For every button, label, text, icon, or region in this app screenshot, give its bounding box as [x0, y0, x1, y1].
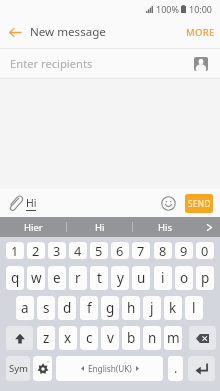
staticText: 9 — [180, 242, 188, 259]
staticText: w — [31, 269, 42, 287]
button[interactable]: f — [80, 296, 98, 320]
staticText: m — [167, 329, 180, 347]
button[interactable]: j — [143, 296, 161, 320]
staticText: 4 — [74, 242, 82, 259]
staticText: e — [53, 269, 61, 287]
button[interactable]: His — [133, 217, 198, 237]
staticText: v — [107, 329, 114, 347]
button[interactable]: a — [16, 296, 34, 320]
button[interactable]: SEND — [185, 194, 213, 213]
staticText: SEND — [188, 198, 211, 209]
button[interactable]: 3 — [48, 242, 66, 259]
staticText: 7 — [137, 242, 145, 259]
button[interactable]: m — [164, 326, 182, 350]
staticText: o — [180, 269, 189, 287]
button[interactable]: Shift — [6, 326, 33, 350]
staticText: . — [174, 360, 178, 377]
button[interactable]: 1 — [6, 242, 24, 259]
button[interactable]: 6 — [111, 242, 129, 259]
button[interactable]: r — [69, 266, 87, 290]
staticText: b — [127, 329, 136, 347]
button[interactable]: Space — [56, 356, 163, 381]
staticText: n — [148, 329, 157, 347]
staticText: q — [11, 269, 20, 287]
staticText: Hier — [24, 221, 43, 234]
staticText: y — [117, 269, 124, 287]
staticText: English(UK) — [88, 363, 132, 374]
button[interactable]: 9 — [175, 242, 193, 259]
button[interactable]: Sym — [6, 356, 30, 381]
staticText: l — [192, 299, 196, 317]
button[interactable]: Keyboard settings — [33, 356, 52, 381]
staticText: p — [201, 269, 210, 287]
button[interactable]: Hi — [67, 217, 132, 237]
staticText: Sym — [9, 362, 28, 375]
button[interactable]: h — [122, 296, 140, 320]
button[interactable]: w — [27, 266, 45, 290]
button[interactable]: v — [101, 326, 119, 350]
button[interactable]: Contacts — [194, 57, 208, 71]
button[interactable]: c — [80, 326, 98, 350]
staticText: 5 — [95, 242, 103, 259]
staticText: Enter recipients — [10, 56, 93, 71]
button[interactable]: o — [175, 266, 193, 290]
button[interactable]: p — [196, 266, 214, 290]
button[interactable]: d — [58, 296, 76, 320]
staticText: x — [64, 329, 72, 347]
button[interactable]: Backspace — [189, 326, 216, 350]
staticText: a — [21, 299, 29, 317]
staticText: 2 — [32, 242, 40, 259]
staticText: 0 — [201, 242, 209, 259]
staticText: j — [150, 299, 154, 317]
staticText: t — [97, 269, 102, 287]
button[interactable]: 4 — [69, 242, 87, 259]
staticText: 3 — [53, 242, 61, 259]
button[interactable]: More suggestions — [198, 217, 220, 237]
button[interactable]: Enter — [188, 356, 215, 381]
button[interactable]: Hier — [0, 217, 66, 237]
button[interactable]: y — [111, 266, 129, 290]
button[interactable]: MORE — [179, 19, 220, 46]
staticText: 8 — [159, 242, 167, 259]
staticText: z — [43, 329, 50, 347]
button[interactable]: q — [6, 266, 24, 290]
staticText: His — [158, 221, 173, 234]
button[interactable]: 8 — [154, 242, 172, 259]
staticText: c — [86, 329, 93, 347]
staticText: 100% — [156, 3, 179, 15]
staticText: g — [106, 299, 115, 317]
button[interactable]: u — [132, 266, 150, 290]
button[interactable]: b — [122, 326, 140, 350]
button[interactable]: k — [164, 296, 182, 320]
staticText: New message — [30, 24, 106, 40]
button[interactable]: s — [37, 296, 55, 320]
button[interactable]: g — [101, 296, 119, 320]
staticText: Hi — [95, 221, 105, 234]
button[interactable]: 2 — [27, 242, 45, 259]
button[interactable]: 7 — [132, 242, 150, 259]
staticText: d — [63, 299, 72, 317]
staticText: 1 — [11, 242, 19, 259]
button[interactable]: i — [154, 266, 172, 290]
button[interactable]: Emoji — [158, 193, 179, 214]
staticText: r — [75, 269, 81, 287]
button[interactable]: l — [185, 296, 203, 320]
button[interactable]: 0 — [196, 242, 214, 259]
staticText: 6 — [116, 242, 124, 259]
button[interactable]: n — [143, 326, 161, 350]
button[interactable]: z — [37, 326, 55, 350]
staticText: MORE — [186, 26, 215, 39]
button[interactable]: 5 — [90, 242, 108, 259]
staticText: k — [169, 299, 177, 317]
staticText: 10:00 — [189, 3, 213, 15]
button[interactable]: Attach file — [4, 192, 26, 214]
button[interactable]: t — [90, 266, 108, 290]
button[interactable]: . — [168, 356, 183, 381]
staticText: Hi — [26, 196, 37, 210]
button[interactable]: x — [59, 326, 77, 350]
staticText: i — [161, 269, 165, 287]
staticText: s — [43, 299, 50, 317]
button[interactable]: Back — [2, 19, 28, 45]
button[interactable]: e — [48, 266, 66, 290]
staticText: f — [87, 299, 92, 317]
